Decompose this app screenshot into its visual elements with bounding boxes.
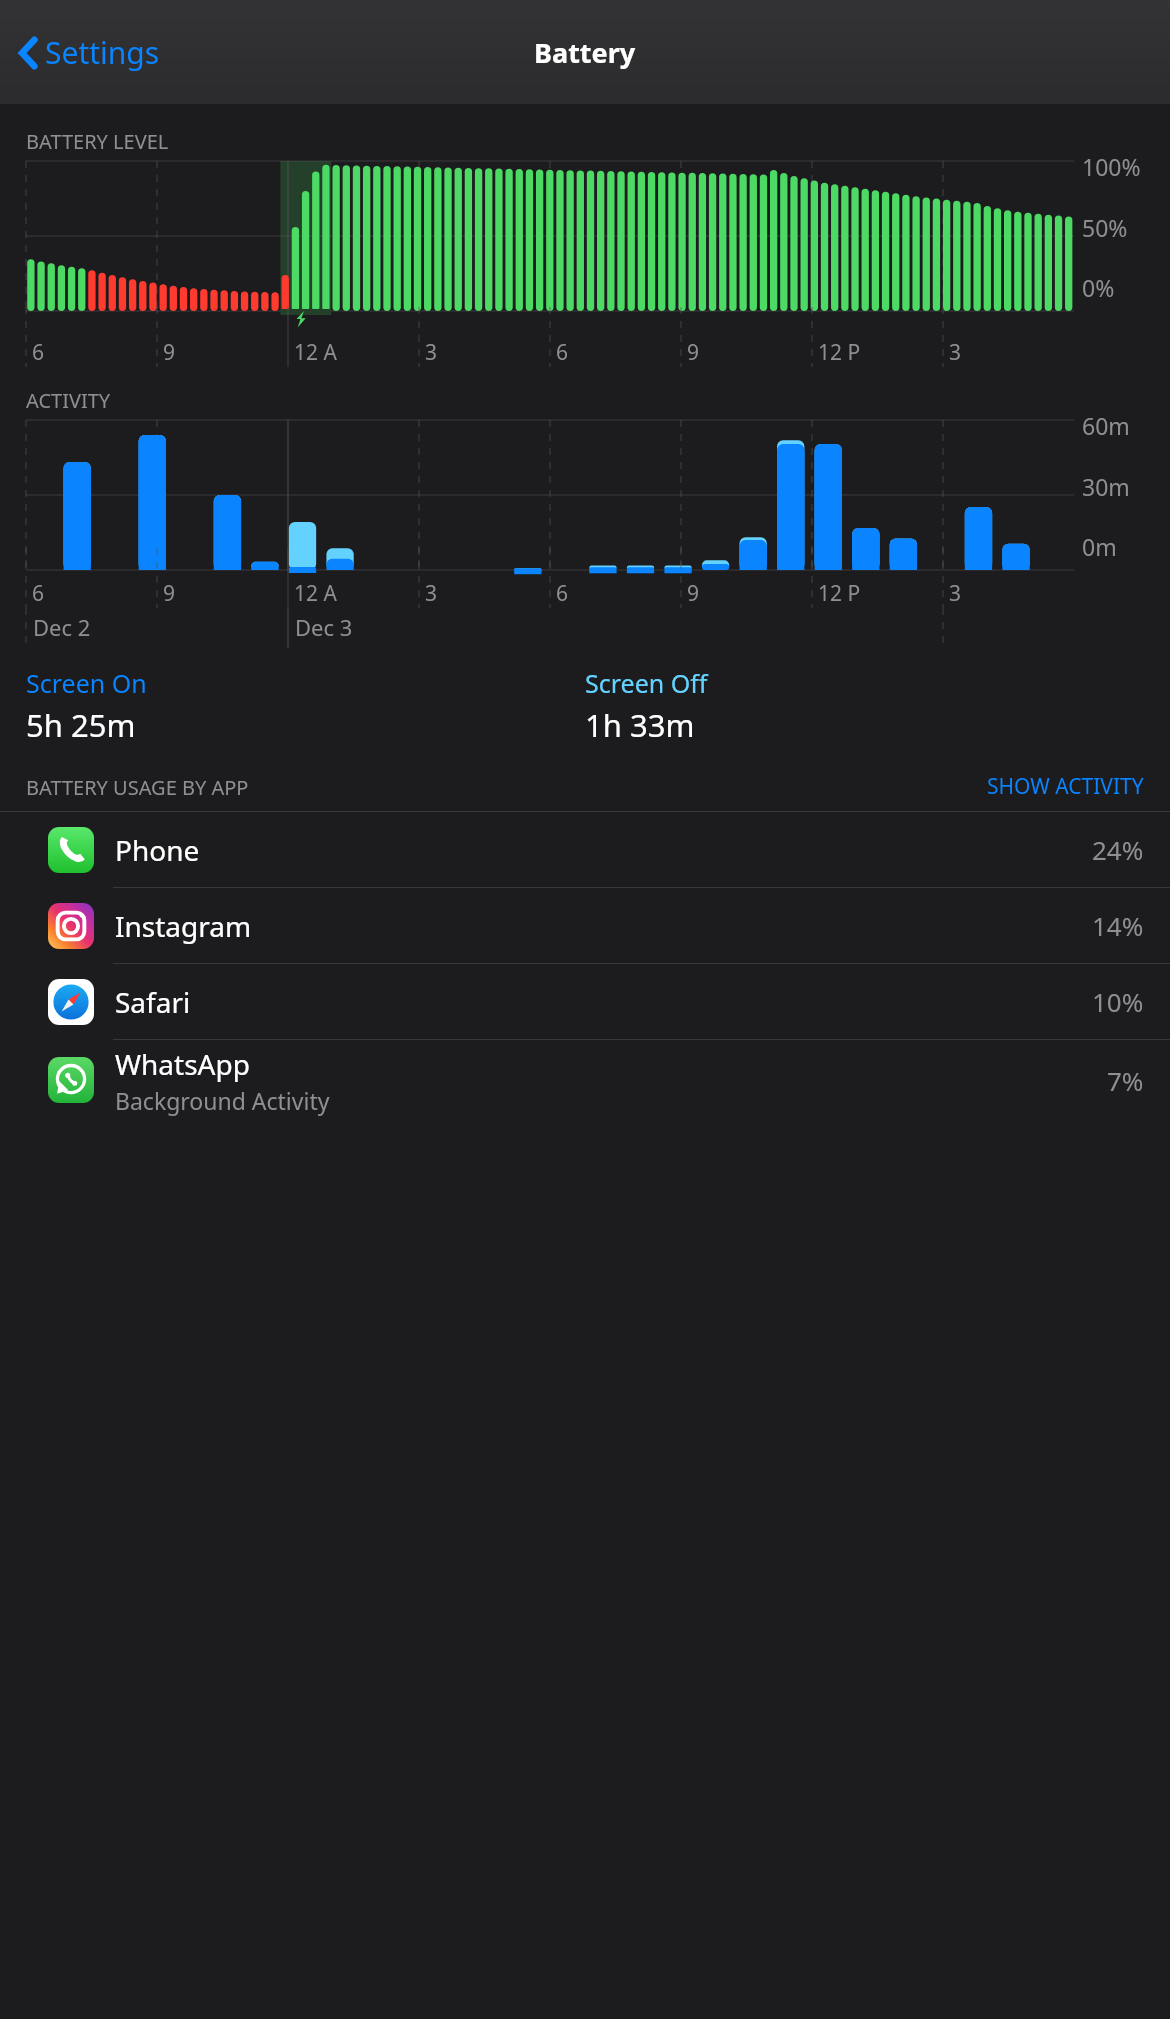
staticText: 7% (1107, 1063, 1144, 1098)
staticText: BATTERY USAGE BY APP (26, 774, 249, 801)
staticText: 3 (425, 338, 438, 367)
staticText: Battery (534, 34, 636, 71)
staticText: Phone (115, 831, 200, 869)
button[interactable]: SHOW ACTIVITY (987, 772, 1144, 801)
staticText: 5h 25m (26, 704, 136, 746)
staticText: 12 A (294, 338, 337, 367)
staticText: 12 A (294, 579, 337, 608)
staticText: 9 (163, 338, 176, 367)
staticText: 6 (32, 338, 45, 367)
button[interactable]: Phone (0, 812, 1170, 887)
staticText: Instagram (115, 907, 252, 945)
staticText: 30m (1082, 471, 1130, 502)
staticText: 0% (1082, 272, 1115, 303)
staticText: Dec 3 (295, 612, 353, 642)
staticText: 9 (687, 338, 700, 367)
staticText: 1h 33m (585, 704, 695, 746)
staticText: 14% (1092, 908, 1144, 943)
button[interactable]: Settings (14, 24, 166, 81)
button[interactable]: Instagram (0, 888, 1170, 963)
staticText: 0m (1082, 531, 1117, 562)
staticText: 6 (556, 338, 569, 367)
staticText: Settings (45, 32, 160, 73)
staticText: 12 P (818, 579, 861, 608)
staticText: Safari (115, 983, 191, 1021)
staticText: WhatsApp (115, 1045, 250, 1083)
staticText: 10% (1092, 984, 1144, 1019)
staticText: 3 (949, 579, 962, 608)
staticText: 24% (1092, 832, 1144, 867)
staticText: 3 (949, 338, 962, 367)
staticText: Screen Off (585, 666, 708, 700)
staticText: Screen On (26, 666, 147, 700)
staticText: 6 (556, 579, 569, 608)
button[interactable]: WhatsApp (0, 1040, 1170, 1120)
staticText: ACTIVITY (26, 387, 111, 414)
staticText: 60m (1082, 410, 1130, 441)
staticText: 3 (425, 579, 438, 608)
staticText: 6 (32, 579, 45, 608)
staticText: Dec 2 (33, 612, 91, 642)
staticText: 9 (163, 579, 176, 608)
staticText: 12 P (818, 338, 861, 367)
staticText: Background Activity (115, 1085, 330, 1116)
staticText: 50% (1082, 212, 1128, 243)
staticText: BATTERY LEVEL (26, 128, 169, 155)
staticText: SHOW ACTIVITY (987, 772, 1144, 801)
button[interactable]: Safari (0, 964, 1170, 1039)
staticText: 9 (687, 579, 700, 608)
staticText: 100% (1082, 151, 1141, 182)
